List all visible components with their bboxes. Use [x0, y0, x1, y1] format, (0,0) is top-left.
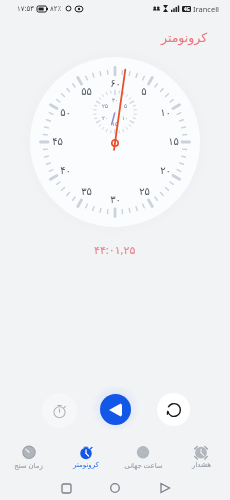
staticText: ۲۰	[160, 165, 171, 177]
staticText: ۳۵	[81, 186, 92, 198]
staticText: زمان سنج	[14, 461, 43, 471]
button[interactable]: Lap	[42, 393, 77, 428]
staticText: Irancell	[193, 4, 220, 14]
staticText: ۳۰	[110, 194, 121, 206]
staticText: ۵	[141, 86, 147, 98]
staticText: ۴۰	[60, 165, 71, 177]
button[interactable]: زمان سنج	[0, 438, 57, 476]
staticText: ۵۵	[81, 86, 92, 98]
staticText: ساعت جهانی	[124, 461, 163, 471]
staticText: ۵۰	[60, 107, 71, 119]
button[interactable]: کرونومتر	[57, 438, 114, 476]
button[interactable]: Reset	[157, 393, 190, 426]
staticText: کرونومتر	[161, 30, 208, 45]
staticText: ۲۵	[102, 103, 108, 109]
staticText: ۲۵	[139, 186, 150, 198]
staticText: کرونومتر	[73, 461, 99, 469]
staticText: ۱۷:۵۳	[17, 4, 34, 14]
staticText: ۵	[124, 103, 127, 109]
button[interactable]: Home	[105, 478, 125, 498]
button[interactable]: Start	[100, 394, 131, 425]
staticText: 4G	[184, 6, 190, 12]
staticText: ۴۴:۰۱,۲۵	[94, 242, 136, 257]
staticText: ۱۵	[112, 121, 118, 127]
staticText: ۸۲٪	[50, 5, 62, 13]
staticText: هشدار	[192, 461, 211, 469]
staticText: ۱۰	[122, 115, 128, 121]
button[interactable]: ساعت جهانی	[114, 438, 172, 476]
staticText: ۱۰	[160, 107, 171, 119]
button[interactable]: Recents	[56, 478, 76, 498]
staticText: ۶۰	[110, 78, 121, 90]
staticText: ۲۰	[102, 115, 108, 121]
button[interactable]: هشدار	[172, 438, 230, 476]
staticText: ۳۰	[112, 97, 118, 103]
button[interactable]: Back	[155, 478, 175, 498]
staticText: ۱۵	[168, 136, 179, 148]
staticText: ۴۵	[52, 136, 63, 148]
